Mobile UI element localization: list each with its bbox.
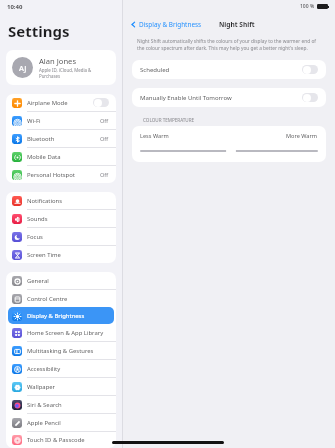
staticText: Personal Hotspot bbox=[27, 171, 100, 179]
staticText: Multitasking & Gestures bbox=[27, 347, 109, 355]
button[interactable]: Accessibility bbox=[8, 360, 114, 377]
staticText: Home Screen & App Library bbox=[27, 329, 109, 337]
button[interactable]: Wi-Fi bbox=[8, 112, 114, 129]
staticText: Apple Pencil bbox=[27, 419, 109, 427]
staticText: Off bbox=[100, 117, 109, 125]
staticText: Wallpaper bbox=[27, 383, 109, 391]
staticText: Night Shift automatically shifts the col… bbox=[137, 38, 321, 51]
staticText: Bluetooth bbox=[27, 135, 100, 143]
staticText: Night Shift bbox=[219, 20, 255, 29]
staticText: 100 % bbox=[300, 3, 315, 10]
staticText: 10:40 bbox=[7, 3, 23, 11]
button[interactable]: General bbox=[8, 272, 114, 289]
staticText: Display & Brightness bbox=[139, 20, 202, 29]
staticText: AJ bbox=[19, 63, 27, 73]
staticText: Off bbox=[100, 171, 109, 179]
staticText: Scheduled bbox=[140, 66, 302, 74]
staticText: Touch ID & Passcode bbox=[27, 436, 109, 444]
staticText: Settings bbox=[8, 21, 70, 41]
staticText: Notifications bbox=[27, 197, 109, 205]
button[interactable]: Bluetooth bbox=[8, 130, 114, 147]
button[interactable]: Wallpaper bbox=[8, 378, 114, 395]
button[interactable]: Notifications bbox=[8, 192, 114, 209]
staticText: Mobile Data bbox=[27, 153, 109, 161]
button[interactable]: Mobile Data bbox=[8, 148, 114, 165]
staticText: Sounds bbox=[27, 215, 109, 223]
button[interactable]: Touch ID & Passcode bbox=[8, 432, 114, 448]
staticText: Wi-Fi bbox=[27, 117, 100, 125]
staticText: More Warm bbox=[286, 132, 318, 140]
button[interactable]: Airplane Mode toggle bbox=[93, 98, 109, 107]
button[interactable]: Display & Brightness bbox=[8, 307, 114, 324]
button[interactable]: Airplane Mode bbox=[8, 94, 114, 111]
staticText: Siri & Search bbox=[27, 401, 109, 409]
staticText: Apple ID, iCloud, Media & Purchases bbox=[39, 67, 110, 79]
button[interactable]: AJ bbox=[6, 50, 116, 85]
staticText: Off bbox=[100, 135, 109, 143]
button[interactable]: Display & Brightness bbox=[129, 18, 203, 31]
button[interactable]: Focus bbox=[8, 228, 114, 245]
staticText: Display & Brightness bbox=[27, 312, 109, 320]
button[interactable]: Manually Enable Until Tomorrow bbox=[132, 88, 326, 107]
button[interactable]: Apple Pencil bbox=[8, 414, 114, 431]
staticText: Airplane Mode bbox=[27, 99, 93, 107]
staticText: Less Warm bbox=[140, 132, 169, 140]
staticText: General bbox=[27, 277, 109, 285]
staticText: COLOUR TEMPERATURE bbox=[143, 117, 195, 123]
button[interactable]: Personal Hotspot bbox=[8, 166, 114, 183]
button[interactable]: Control Centre bbox=[8, 290, 114, 307]
staticText: Control Centre bbox=[27, 295, 109, 303]
staticText: Focus bbox=[27, 233, 109, 241]
button[interactable]: Sounds bbox=[8, 210, 114, 227]
staticText: Screen Time bbox=[27, 251, 109, 259]
button[interactable]: Scheduled bbox=[132, 60, 326, 79]
button[interactable]: Home Screen & App Library bbox=[8, 324, 114, 341]
button[interactable]: Siri & Search bbox=[8, 396, 114, 413]
button[interactable]: Screen Time bbox=[8, 246, 114, 263]
staticText: Manually Enable Until Tomorrow bbox=[140, 94, 302, 102]
staticText: Alan Jones bbox=[39, 56, 77, 66]
staticText: Accessibility bbox=[27, 365, 109, 373]
button[interactable]: Multitasking & Gestures bbox=[8, 342, 114, 359]
button[interactable]: Colour temperature slider bbox=[140, 145, 318, 156]
